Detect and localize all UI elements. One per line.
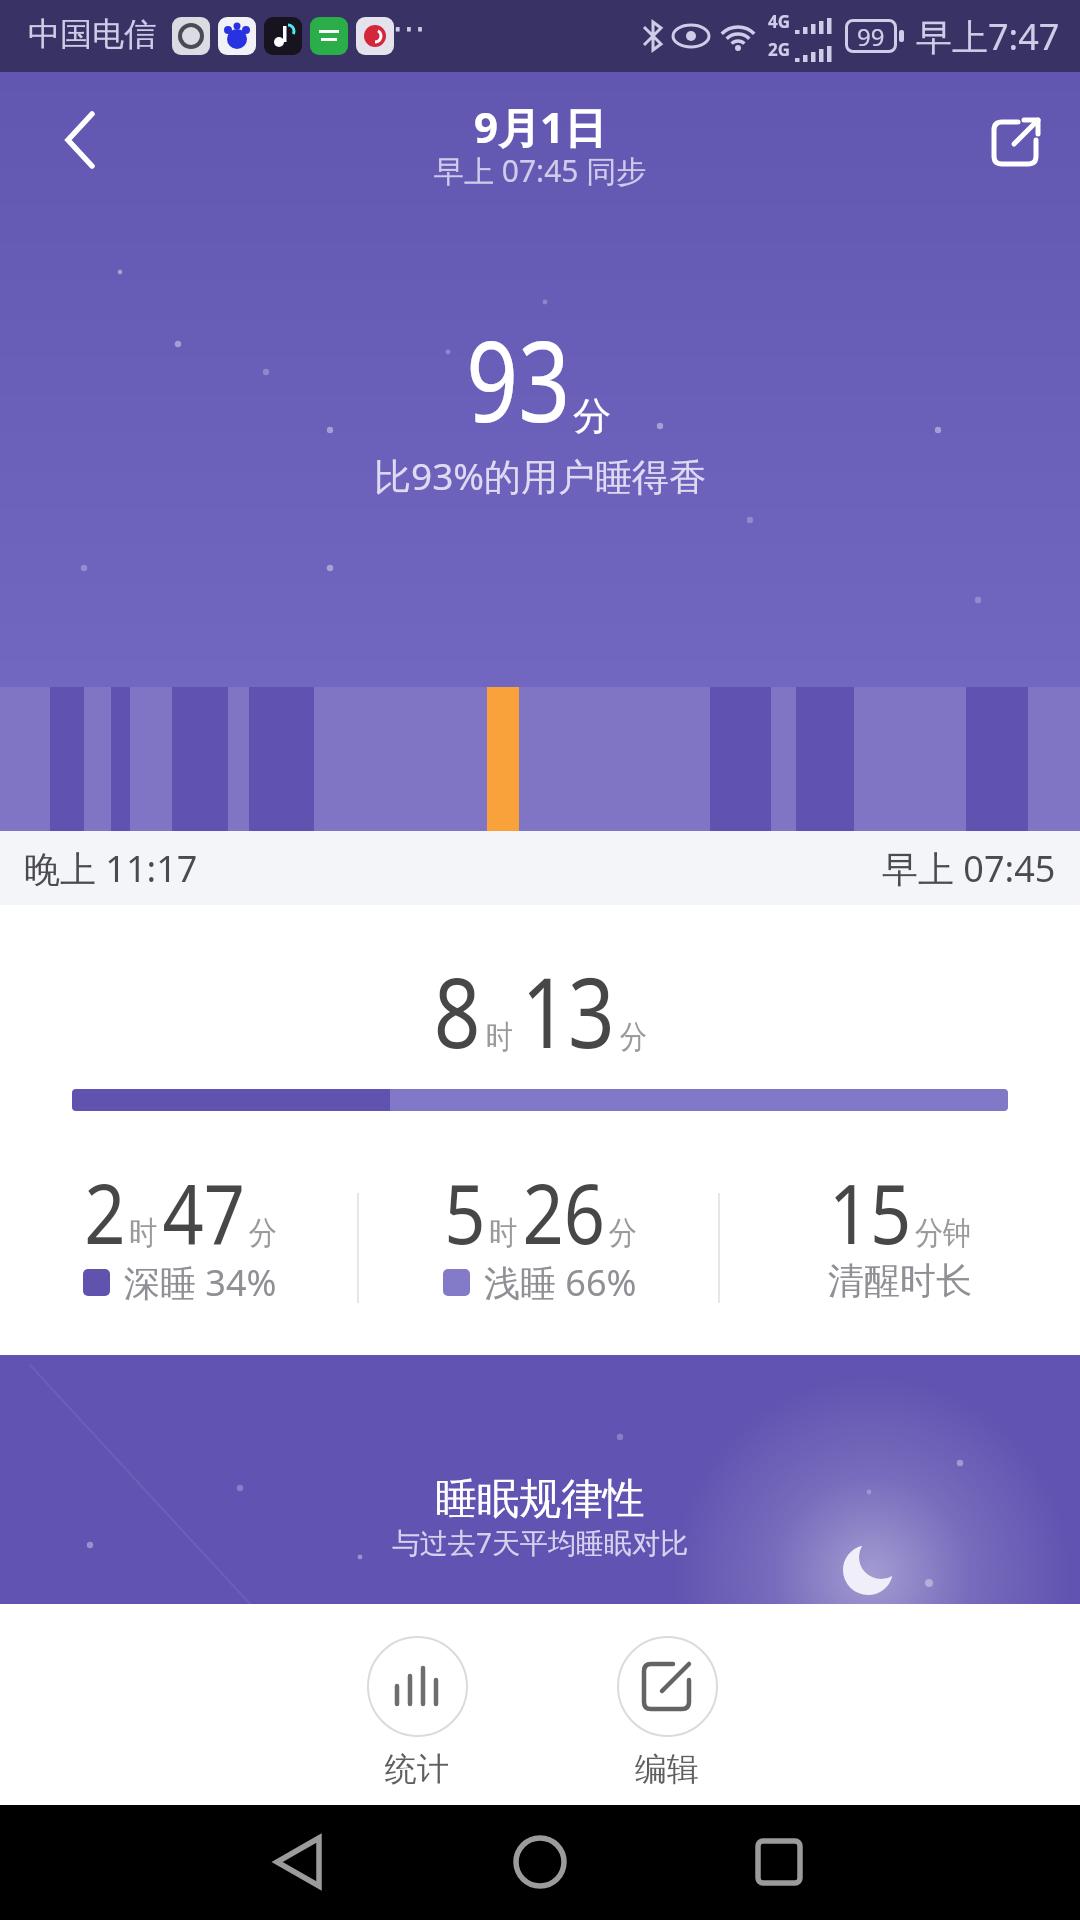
staticText: 47 xyxy=(162,1156,245,1268)
button[interactable] xyxy=(40,102,120,182)
staticText: 5 xyxy=(444,1156,485,1268)
button[interactable] xyxy=(966,98,1056,188)
staticText: 分 xyxy=(573,392,611,440)
staticText: 9月1日 xyxy=(474,98,607,155)
button[interactable] xyxy=(247,1812,347,1912)
button[interactable] xyxy=(729,1812,829,1912)
staticText: 分 xyxy=(620,1017,647,1057)
staticText: 4G xyxy=(768,10,791,33)
staticText: 中国电信 xyxy=(28,14,156,54)
staticText: 99 xyxy=(857,20,885,53)
staticText: ⋯ xyxy=(392,8,426,48)
staticText: 晚上 11:17 xyxy=(24,844,198,893)
button[interactable]: 统计 xyxy=(357,1636,477,1789)
staticText: 早上 07:45 同步 xyxy=(434,150,647,191)
staticText: 2 xyxy=(84,1156,125,1268)
staticText: 浅睡 66% xyxy=(484,1258,637,1307)
staticText: 比93%的用户睡得香 xyxy=(374,450,707,501)
staticText: 分 xyxy=(249,1213,277,1253)
staticText: 编辑 xyxy=(635,1749,699,1789)
staticText: 深睡 34% xyxy=(124,1258,277,1307)
staticText: 分钟 xyxy=(915,1213,971,1253)
staticText: 26 xyxy=(522,1156,605,1268)
staticText: 早上7:47 xyxy=(916,12,1060,61)
staticText: 时 xyxy=(129,1213,157,1253)
staticText: 清醒时长 xyxy=(828,1258,972,1303)
staticText: 8 xyxy=(434,945,481,1076)
staticText: 2G xyxy=(768,38,791,61)
staticText: 睡眠规律性 xyxy=(435,1473,645,1526)
staticText: 93 xyxy=(466,302,571,455)
button[interactable]: 编辑 xyxy=(607,1636,727,1789)
button[interactable] xyxy=(490,1812,590,1912)
staticText: 早上 07:45 xyxy=(882,844,1056,893)
staticText: 统计 xyxy=(385,1749,449,1789)
staticText: 15 xyxy=(829,1156,911,1268)
button[interactable]: 睡眠规律性 xyxy=(0,1355,1080,1604)
staticText: 与过去7天平均睡眠对比 xyxy=(392,1523,689,1561)
staticText: 时 xyxy=(489,1213,517,1253)
staticText: 时 xyxy=(486,1017,513,1057)
staticText: 13 xyxy=(521,945,615,1076)
staticText: 分 xyxy=(609,1213,637,1253)
